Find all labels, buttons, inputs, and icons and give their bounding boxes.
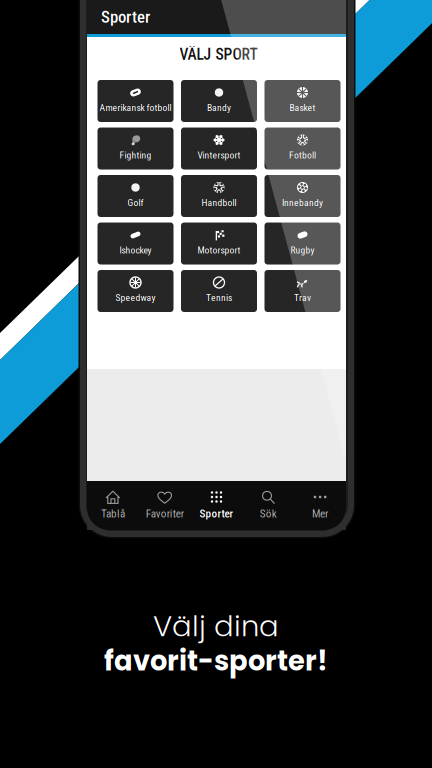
staticText: Vintersport bbox=[197, 149, 240, 161]
staticText: Sporter bbox=[101, 7, 150, 27]
staticText: Fotboll bbox=[289, 149, 316, 161]
button[interactable]: Tablå bbox=[87, 481, 139, 530]
button[interactable]: Bandy bbox=[181, 80, 257, 122]
staticText: Motorsport bbox=[197, 244, 240, 256]
button[interactable]: Rugby bbox=[264, 222, 340, 264]
button[interactable]: Amerikansk fotboll bbox=[97, 80, 173, 122]
button[interactable]: Basket bbox=[264, 80, 340, 122]
staticText: Välj dina bbox=[153, 606, 279, 646]
button[interactable]: Speedway bbox=[97, 270, 173, 312]
button[interactable]: Fotboll bbox=[264, 127, 340, 169]
staticText: Handboll bbox=[201, 197, 236, 208]
button[interactable]: Tennis bbox=[181, 270, 257, 312]
button[interactable]: Sporter bbox=[191, 481, 242, 530]
staticText: Fighting bbox=[119, 149, 151, 161]
button[interactable]: Mer bbox=[294, 481, 346, 530]
button[interactable]: Fighting bbox=[97, 127, 173, 169]
staticText: VÄLJ SPORT bbox=[179, 45, 257, 64]
staticText: Tablå bbox=[101, 507, 125, 520]
button[interactable]: Ishockey bbox=[97, 222, 173, 264]
staticText: Sporter bbox=[199, 507, 233, 520]
button[interactable]: Innebandy bbox=[264, 175, 340, 217]
staticText: Favoriter bbox=[146, 507, 184, 520]
button[interactable]: Motorsport bbox=[181, 222, 257, 264]
staticText: favorit-sporter! bbox=[104, 642, 328, 680]
staticText: Trav bbox=[294, 292, 311, 303]
staticText: Tennis bbox=[206, 292, 232, 303]
button[interactable]: Golf bbox=[97, 175, 173, 217]
button[interactable]: Handboll bbox=[181, 175, 257, 217]
button[interactable]: Sök bbox=[242, 481, 294, 530]
button[interactable]: Sporter bbox=[87, 0, 346, 34]
staticText: Sök bbox=[260, 507, 277, 520]
staticText: Basket bbox=[289, 102, 315, 113]
button[interactable]: Vintersport bbox=[181, 127, 257, 169]
staticText: Ishockey bbox=[119, 244, 151, 256]
staticText: Golf bbox=[127, 197, 143, 208]
staticText: Mer bbox=[312, 507, 328, 520]
staticText: Innebandy bbox=[282, 197, 323, 208]
staticText: Bandy bbox=[207, 102, 231, 113]
staticText: Rugby bbox=[290, 244, 314, 256]
button[interactable]: Trav bbox=[264, 270, 340, 312]
button[interactable]: Favoriter bbox=[139, 481, 191, 530]
staticText: Amerikansk fotboll bbox=[99, 102, 171, 113]
staticText: Speedway bbox=[115, 292, 155, 303]
